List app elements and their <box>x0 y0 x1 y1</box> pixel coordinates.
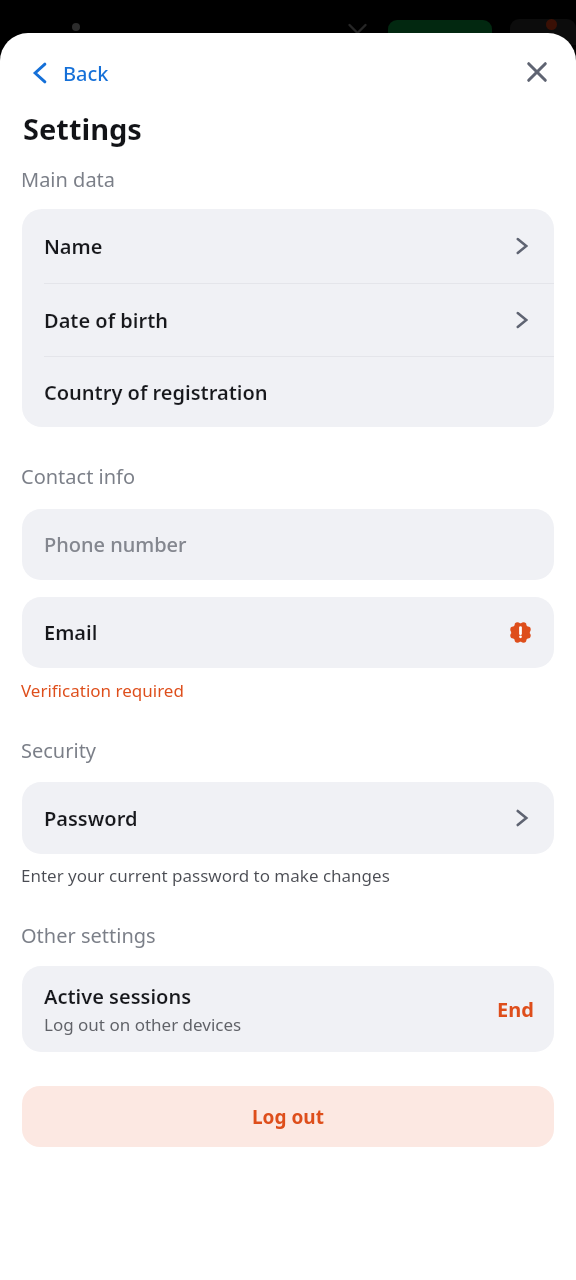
button[interactable]: Log out <box>22 1086 554 1147</box>
button[interactable]: Close <box>515 50 559 94</box>
button[interactable]: Country of registration <box>22 357 554 427</box>
button[interactable]: Date of birth <box>22 284 554 356</box>
staticText: Verification required <box>21 679 184 702</box>
staticText: Back <box>63 60 109 87</box>
staticText: Name <box>44 233 103 260</box>
staticText: Contact info <box>21 463 136 490</box>
staticText: Enter your current password to make chan… <box>21 864 390 887</box>
button[interactable]: End <box>477 984 554 1035</box>
staticText: Email <box>44 619 98 646</box>
staticText: Country of registration <box>44 379 268 406</box>
staticText: Active sessions <box>44 983 191 1010</box>
button[interactable]: Back <box>30 57 109 89</box>
staticText: Security <box>21 737 97 764</box>
staticText: Other settings <box>21 922 156 949</box>
staticText: Log out on other devices <box>44 1013 242 1036</box>
staticText: Phone number <box>44 531 187 558</box>
staticText: Log out <box>252 1104 324 1130</box>
button[interactable]: Email <box>22 597 554 668</box>
staticText: Date of birth <box>44 307 169 334</box>
staticText: Settings <box>23 109 142 148</box>
staticText: Main data <box>21 166 116 193</box>
button[interactable]: Phone number <box>22 509 554 580</box>
staticText: Password <box>44 805 138 832</box>
button[interactable]: Name <box>22 209 554 283</box>
staticText: End <box>497 996 534 1023</box>
button[interactable]: Password <box>22 782 554 854</box>
